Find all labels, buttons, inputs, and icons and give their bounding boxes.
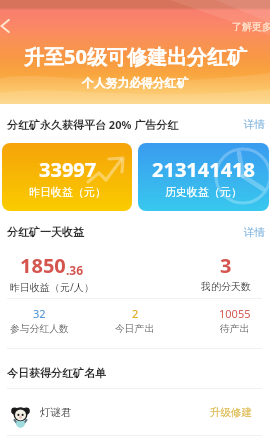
staticText: 详情 xyxy=(244,226,265,239)
button[interactable]: 了解更多 xyxy=(232,20,270,33)
staticText: 历史收益（元） xyxy=(165,185,242,199)
staticText: 昨日收益（元） xyxy=(29,185,106,199)
staticText: 今日产出 xyxy=(115,323,155,335)
staticText: 灯谜君 xyxy=(40,406,72,419)
staticText: 分红矿永久获得平台 20% 广告分红 xyxy=(7,117,179,132)
button[interactable]: 详情 xyxy=(244,226,270,239)
staticText: 2 xyxy=(132,306,139,321)
button[interactable]: Back xyxy=(0,15,15,37)
staticText: 32 xyxy=(33,306,46,321)
staticText: 分红矿一天收益 xyxy=(7,225,84,239)
button[interactable]: 213141418 xyxy=(138,143,269,211)
staticText: 1850 xyxy=(20,252,66,279)
staticText: 详情 xyxy=(244,118,265,131)
staticText: 我的分天数 xyxy=(201,280,251,293)
staticText: 今日获得分红矿名单 xyxy=(7,366,106,380)
staticText: 3 xyxy=(220,252,232,279)
staticText: 33997 xyxy=(39,156,97,183)
button[interactable]: 33997 xyxy=(2,143,132,211)
staticText: 待产出 xyxy=(220,323,250,335)
staticText: 升至50级可修建出分红矿 xyxy=(24,43,247,70)
button[interactable] xyxy=(0,389,270,435)
staticText: 个人努力必得分红矿 xyxy=(82,76,189,91)
staticText: 昨日收益（元/人） xyxy=(10,280,94,294)
staticText: .36 xyxy=(66,262,84,278)
staticText: 10055 xyxy=(219,306,251,321)
staticText: 213141418 xyxy=(152,156,255,183)
button[interactable]: 升级修建 xyxy=(210,406,252,419)
staticText: 参与分红人数 xyxy=(10,323,69,335)
button[interactable]: 详情 xyxy=(244,118,270,131)
